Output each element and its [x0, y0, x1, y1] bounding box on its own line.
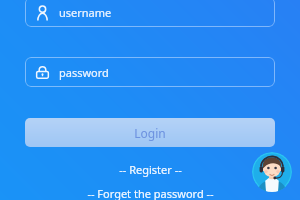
staticText: -- Forget the password --: [87, 186, 214, 200]
staticText: password: [59, 65, 109, 80]
staticText: username: [59, 5, 112, 20]
staticText: -- Register --: [119, 162, 182, 177]
button[interactable]: password: [25, 57, 275, 87]
button[interactable]: -- Forget the password --: [0, 186, 300, 200]
button[interactable]: Customer support: [252, 152, 292, 192]
button[interactable]: Login: [25, 118, 275, 147]
staticText: Login: [134, 125, 166, 141]
button[interactable]: username: [25, 0, 275, 27]
button[interactable]: -- Register --: [0, 160, 300, 178]
